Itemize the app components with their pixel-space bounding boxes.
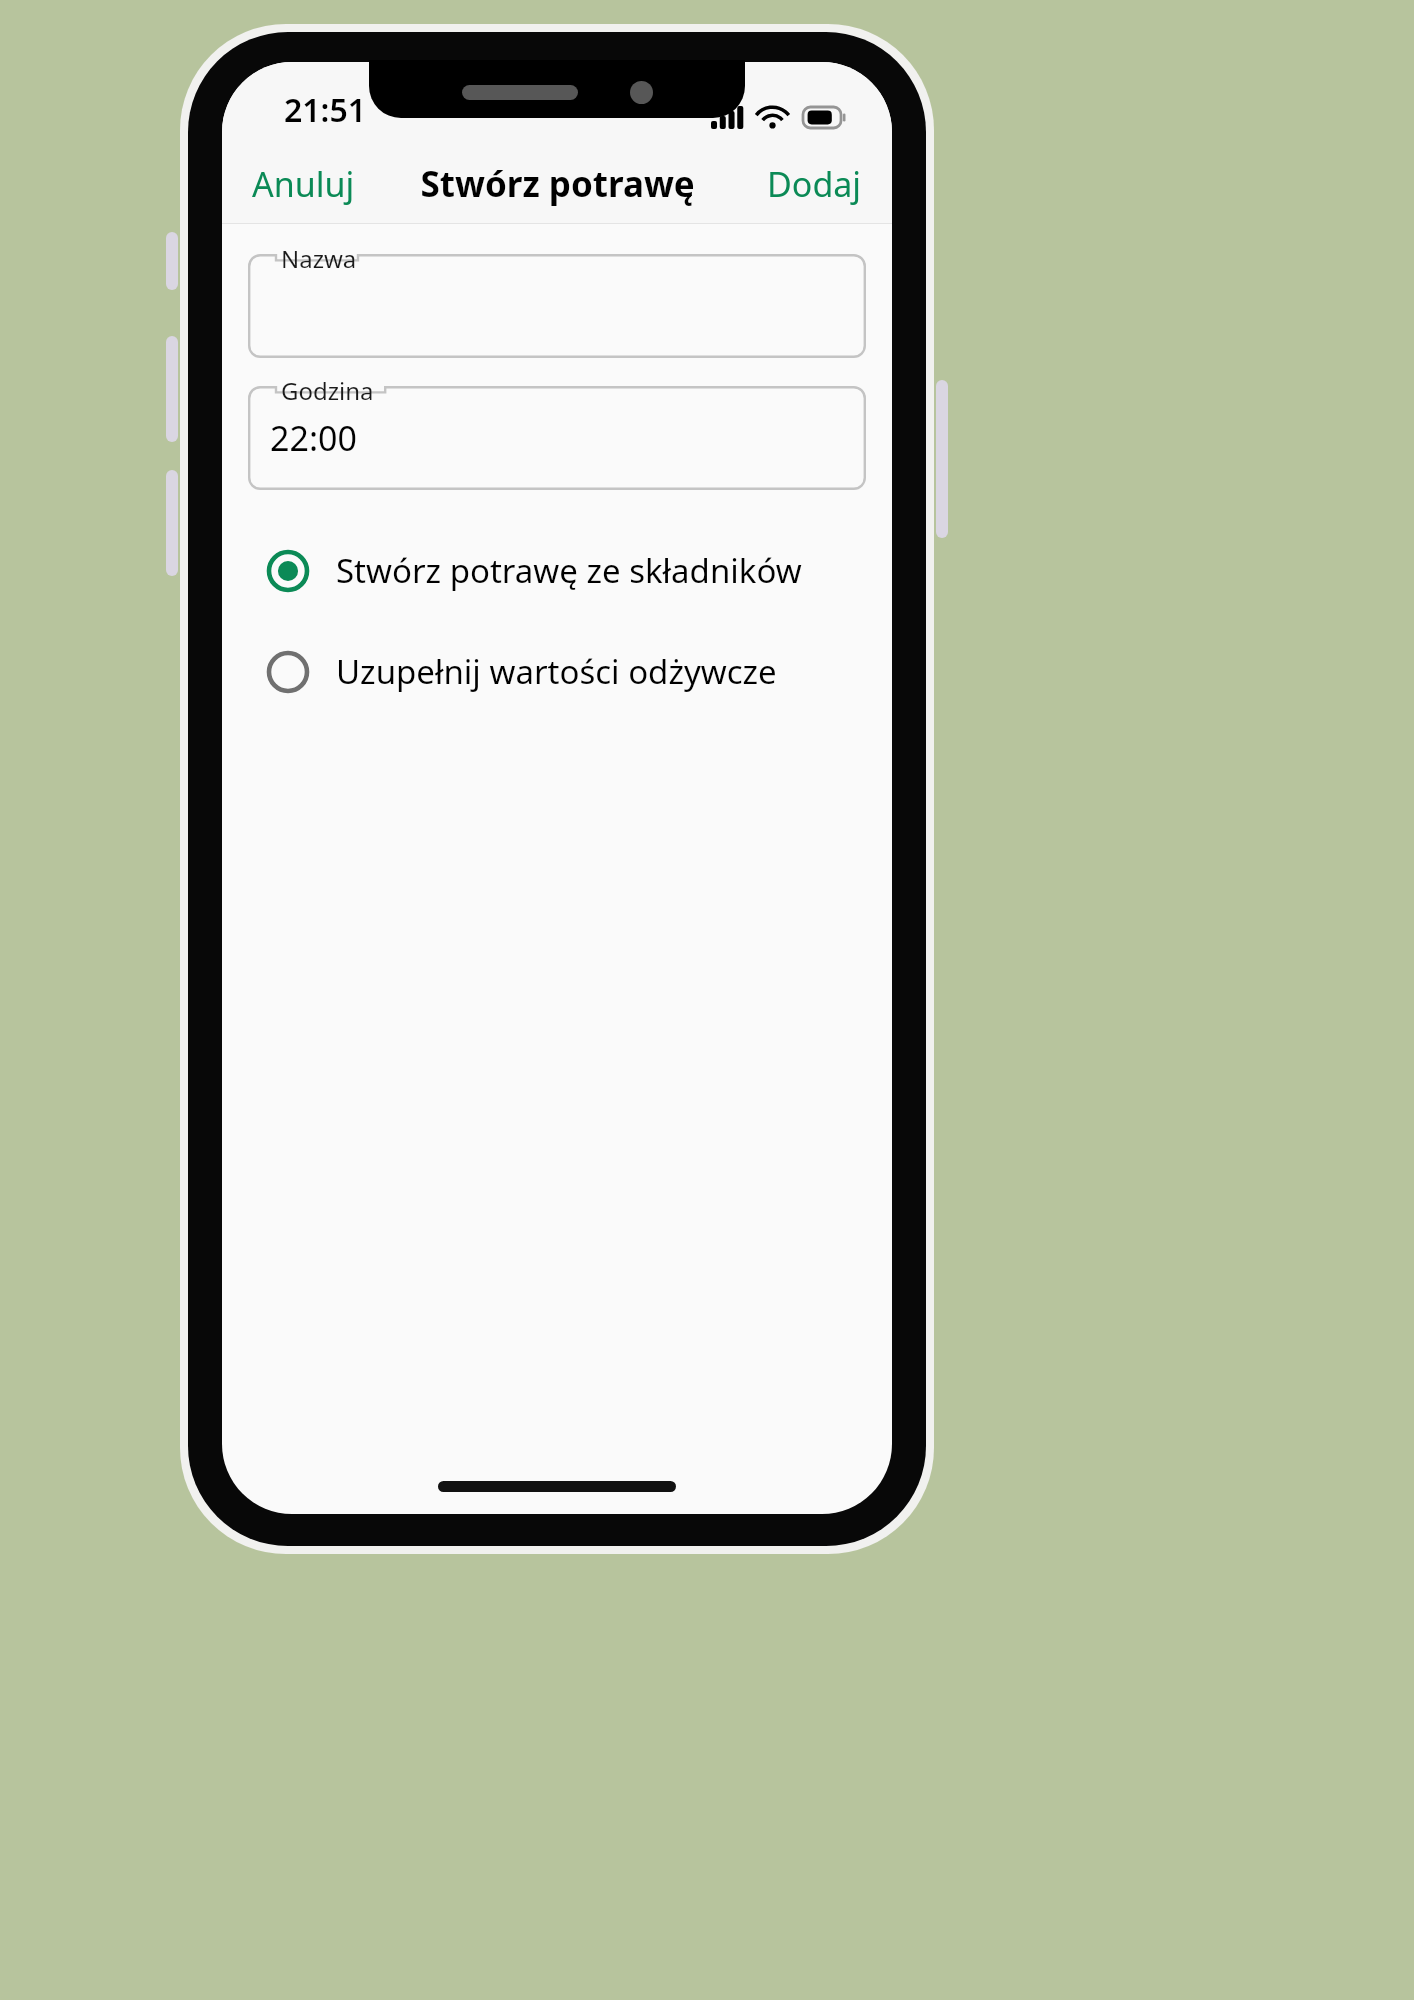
staticText: Anuluj [252,161,355,207]
staticText: Stwórz potrawę [420,160,695,208]
button[interactable]: Godzina [248,386,866,490]
staticText: 22:00 [270,415,357,461]
staticText: Nazwa [281,242,357,275]
staticText: Uzupełnij wartości odżywcze [336,649,777,694]
staticText: Dodaj [767,161,862,207]
button[interactable]: Option [248,633,866,710]
other: Selected option [266,549,310,593]
staticText: Godzina [281,374,374,407]
button[interactable]: Nazwa [248,254,866,358]
staticText: 21:51 [284,88,367,132]
button[interactable]: Dodaj [737,147,892,221]
other: Option [266,650,310,694]
button[interactable]: Selected option [248,532,866,609]
staticText: Stwórz potrawę ze składników [336,548,802,593]
button[interactable]: Anuluj [222,147,385,221]
